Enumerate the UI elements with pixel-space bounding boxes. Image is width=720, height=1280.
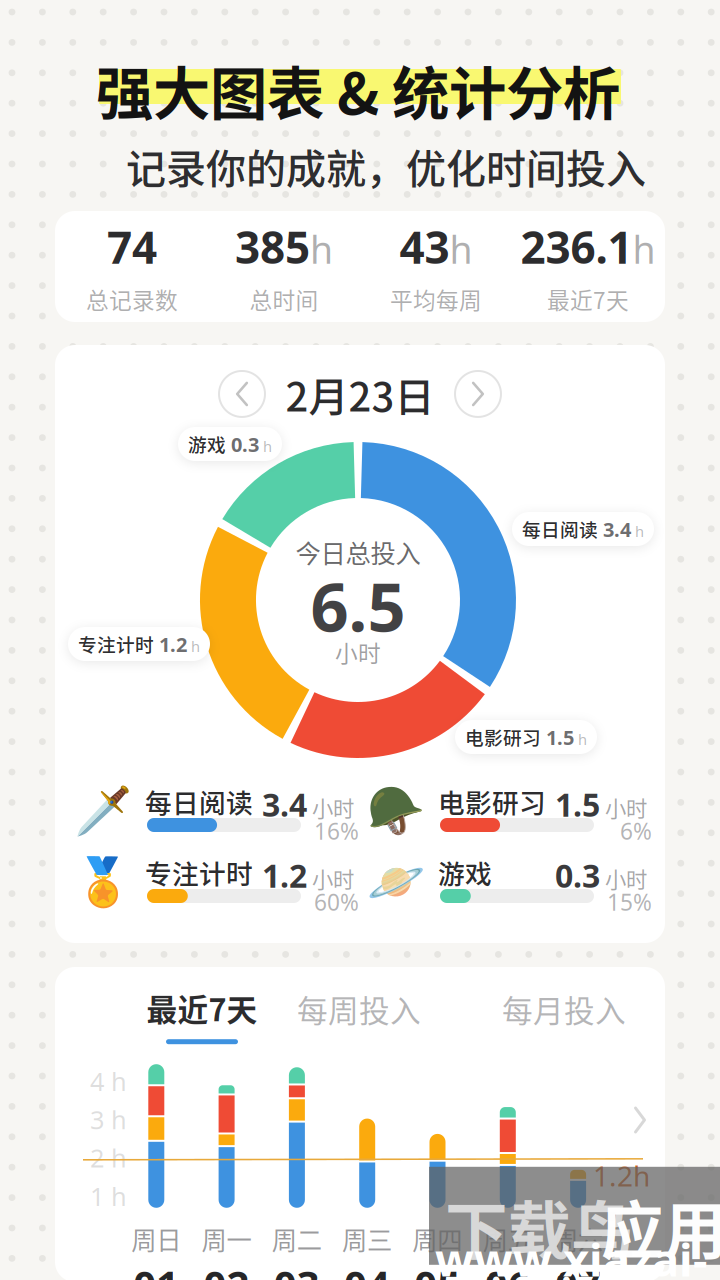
staticText: 236.1 xyxy=(520,217,632,276)
staticText: 2月23日 xyxy=(285,365,434,423)
staticText: 60% xyxy=(314,887,359,917)
staticText: h xyxy=(310,224,333,274)
button[interactable]: 最近7天 xyxy=(132,987,272,1043)
staticText: 🪖 xyxy=(367,784,425,838)
staticText: 每日阅读 xyxy=(145,782,253,821)
staticText: 04 xyxy=(344,1258,390,1280)
staticText: 01 xyxy=(133,1258,179,1280)
staticText: 周五 xyxy=(483,1220,533,1257)
staticText: 1.2 xyxy=(154,631,187,658)
staticText: 02 xyxy=(203,1258,249,1280)
button[interactable]: 上一天 xyxy=(218,370,266,418)
staticText: 🗡️ xyxy=(74,784,132,838)
staticText: 385 xyxy=(235,217,310,276)
staticText: 小时 xyxy=(335,636,381,668)
staticText: 16% xyxy=(314,816,359,846)
staticText: 专注计时 xyxy=(145,853,253,892)
staticText: 43 xyxy=(399,217,449,276)
staticText: 03 xyxy=(274,1258,320,1280)
staticText: 周四 xyxy=(412,1220,462,1257)
staticText: 周一 xyxy=(201,1220,251,1257)
staticText: 3.4 xyxy=(598,516,631,543)
staticText: 最近7天 xyxy=(547,283,629,316)
staticText: 6.5 xyxy=(310,562,405,650)
staticText: 1.5 xyxy=(555,783,600,825)
staticText: h xyxy=(574,730,587,749)
staticText: 🏅 xyxy=(74,855,132,909)
staticText: 6% xyxy=(620,816,652,846)
staticText: 周二 xyxy=(272,1220,322,1257)
staticText: h xyxy=(187,637,200,656)
button[interactable]: 下一天 xyxy=(454,370,502,418)
staticText: 周六 xyxy=(553,1220,603,1257)
staticText: 今日总投入 xyxy=(295,534,420,570)
staticText: 0.3 xyxy=(555,854,600,896)
staticText: h xyxy=(449,224,472,274)
staticText: 1.2 xyxy=(262,854,307,896)
staticText: 每日阅读 xyxy=(522,515,598,542)
staticText: 07 xyxy=(555,1258,601,1280)
staticText: h xyxy=(259,437,272,456)
staticText: 专注计时 xyxy=(78,630,154,657)
staticText: h xyxy=(632,224,655,274)
staticText: 每月投入 xyxy=(502,987,626,1031)
staticText: 15% xyxy=(607,887,652,917)
staticText: 总时间 xyxy=(249,283,318,316)
staticText: 周三 xyxy=(342,1220,392,1257)
staticText: 下载鸟 xyxy=(445,1181,634,1271)
staticText: 平均每周 xyxy=(390,283,482,316)
staticText: 电影研习 xyxy=(465,723,541,750)
staticText: 应用 xyxy=(601,1181,720,1271)
staticText: 周日 xyxy=(131,1220,181,1257)
staticText: 游戏 xyxy=(438,853,492,892)
staticText: 总记录数 xyxy=(86,283,178,316)
staticText: 最近7天 xyxy=(146,986,257,1030)
staticText: 记录你的成就，优化时间投入 xyxy=(126,137,646,195)
staticText: 05 xyxy=(414,1258,460,1280)
staticText: 74 xyxy=(107,217,157,276)
staticText: 4 h xyxy=(90,1064,127,1098)
staticText: 1 h xyxy=(90,1179,127,1213)
button[interactable]: 每周投入 xyxy=(294,987,424,1031)
staticText: 06 xyxy=(485,1258,531,1280)
staticText: 2 h xyxy=(90,1141,127,1174)
staticText: 每周投入 xyxy=(297,987,421,1031)
staticText: 3 h xyxy=(90,1103,127,1136)
staticText: 1.2h xyxy=(593,1157,650,1194)
staticText: 小时 xyxy=(307,863,354,894)
staticText: 0.3 xyxy=(226,431,259,458)
button[interactable]: 每月投入 xyxy=(499,987,629,1031)
staticText: h xyxy=(631,522,644,541)
staticText: www.xiazainiao.com xyxy=(435,1229,708,1280)
staticText: 小时 xyxy=(307,792,354,823)
staticText: 小时 xyxy=(600,863,647,894)
staticText: 小时 xyxy=(600,792,647,823)
staticText: 强大图表 & 统计分析 xyxy=(96,48,620,131)
staticText: 1.5 xyxy=(541,724,574,751)
staticText: 电影研习 xyxy=(438,782,546,821)
staticText: 游戏 xyxy=(188,430,226,457)
staticText: 🪐 xyxy=(367,855,425,909)
staticText: 3.4 xyxy=(262,783,307,825)
